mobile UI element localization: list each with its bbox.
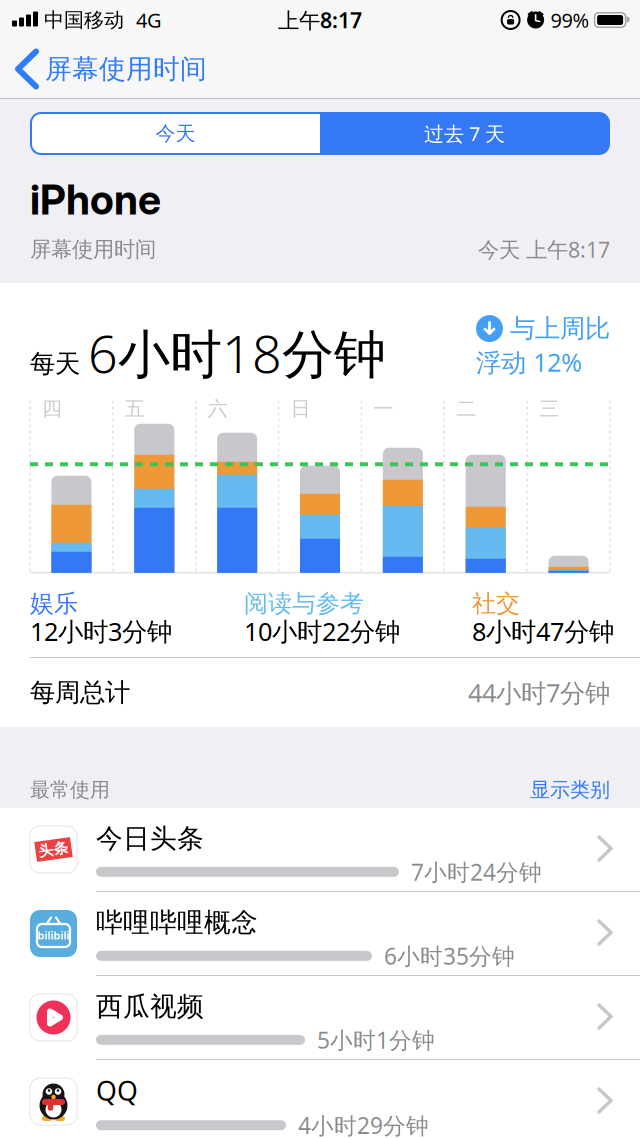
staticText: 最常使用 [30, 777, 110, 802]
staticText: 10小时22分钟 [244, 614, 400, 648]
staticText: 头条 [38, 840, 68, 858]
staticText: 显示类别 [530, 777, 610, 802]
staticText: 屏幕使用时间 [30, 236, 156, 262]
staticText: QQ [96, 1073, 138, 1108]
staticText: 屏幕使用时间 [45, 53, 207, 85]
staticText: 4G [136, 7, 162, 33]
staticText: 四 [42, 396, 62, 421]
staticText: 今天 [155, 121, 195, 146]
staticText: 99% [551, 7, 590, 33]
staticText: 6小时18分钟 [88, 318, 386, 387]
button[interactable]: 西瓜视频 [0, 976, 640, 1059]
button[interactable]: 今天 [31, 113, 320, 154]
staticText: 二 [456, 396, 476, 421]
staticText: 6小时35分钟 [384, 941, 515, 971]
staticText: 一 [373, 396, 393, 421]
staticText: 44小时7分钟 [468, 676, 610, 709]
staticText: 今日头条 [96, 822, 204, 855]
button[interactable]: QQ [0, 1060, 640, 1138]
staticText: 过去 7 天 [424, 120, 505, 147]
staticText: 中国移动 [44, 8, 124, 32]
staticText: 阅读与参考 [244, 589, 364, 618]
staticText: 4小时29分钟 [298, 1110, 429, 1138]
staticText: 8小时47分钟 [472, 614, 614, 648]
staticText: 5小时1分钟 [317, 1025, 435, 1055]
staticText: 社交 [472, 589, 520, 618]
staticText: 西瓜视频 [96, 990, 204, 1023]
button[interactable]: 头条 [0, 808, 640, 891]
staticText: 娱乐 [30, 589, 78, 618]
staticText: 7小时24分钟 [411, 857, 542, 887]
staticText: 日 [291, 396, 311, 421]
staticText: 三 [539, 396, 559, 421]
staticText: 与上周比 [510, 313, 610, 344]
staticText: 每天 [30, 348, 80, 379]
staticText: 今天 上午8:17 [478, 235, 610, 263]
staticText: 浮动 12% [476, 345, 582, 379]
staticText: 五 [125, 396, 145, 421]
staticText: 12小时3分钟 [30, 614, 172, 648]
staticText: iPhone [30, 175, 161, 224]
button[interactable]: 过去 7 天 [320, 113, 609, 154]
staticText: 上午8:17 [278, 6, 362, 34]
staticText: bilibili [37, 929, 69, 942]
button[interactable]: 屏幕使用时间 [0, 51, 207, 86]
staticText: 六 [208, 396, 228, 421]
button[interactable]: bilibili [0, 892, 640, 975]
staticText: 每周总计 [30, 677, 130, 708]
staticText: 哔哩哔哩概念 [96, 906, 258, 939]
button[interactable]: 显示类别 [530, 777, 610, 802]
